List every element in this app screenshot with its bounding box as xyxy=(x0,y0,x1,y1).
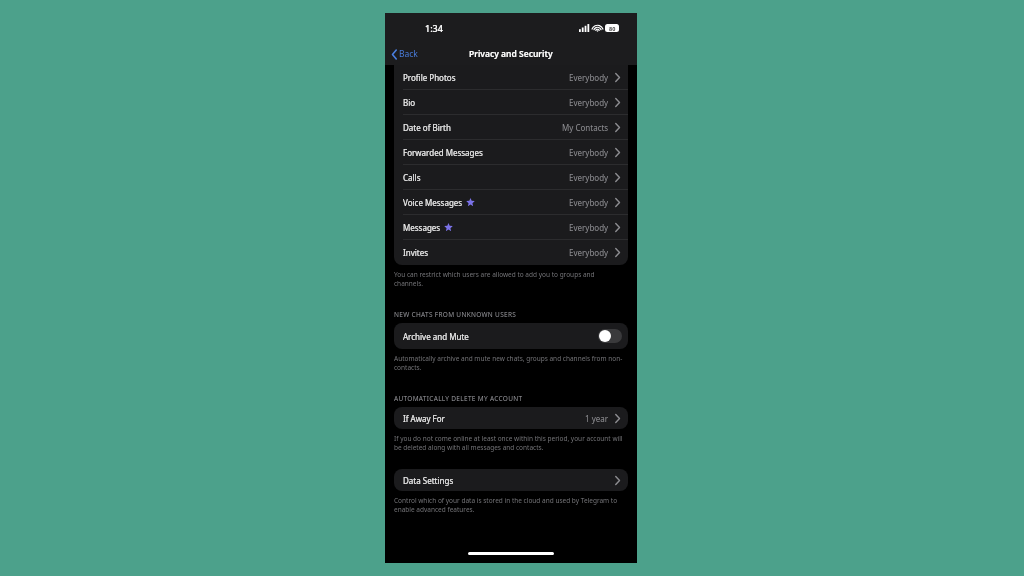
staticText: If you do not come online at least once … xyxy=(394,434,625,452)
staticText: Back xyxy=(399,48,418,60)
staticText: Automatically archive and mute new chats… xyxy=(394,354,625,372)
button[interactable]: Back xyxy=(390,46,420,62)
staticText: 80 xyxy=(609,25,616,32)
staticText: Forwarded Messages xyxy=(403,147,483,158)
button[interactable]: Calls xyxy=(394,165,628,190)
button[interactable]: Archive and Mute xyxy=(394,323,628,349)
staticText: You can restrict which users are allowed… xyxy=(394,270,625,288)
staticText: Everybody xyxy=(569,222,609,233)
button[interactable]: Invites xyxy=(394,240,628,265)
staticText: Archive and Mute xyxy=(403,331,469,342)
button[interactable]: Forwarded Messages xyxy=(394,140,628,165)
button[interactable]: Voice Messages xyxy=(394,190,628,215)
button[interactable]: Bio xyxy=(394,90,628,115)
staticText: 1:34 xyxy=(425,22,443,34)
staticText: Date of Birth xyxy=(403,122,451,133)
staticText: Bio xyxy=(403,97,416,108)
button[interactable]: Messages xyxy=(394,215,628,240)
button[interactable]: Profile Photos xyxy=(394,65,628,90)
staticText: Everybody xyxy=(569,197,609,208)
staticText: Profile Photos xyxy=(403,72,456,83)
button[interactable]: Date of Birth xyxy=(394,115,628,140)
staticText: 1 year xyxy=(585,413,609,424)
staticText: My Contacts xyxy=(562,122,609,133)
button[interactable]: Data Settings xyxy=(394,469,628,491)
staticText: Everybody xyxy=(569,97,609,108)
staticText: Voice Messages xyxy=(403,197,463,208)
staticText: Everybody xyxy=(569,172,609,183)
staticText: Messages xyxy=(403,222,441,233)
staticText: AUTOMATICALLY DELETE MY ACCOUNT xyxy=(394,394,523,403)
staticText: If Away For xyxy=(403,413,445,424)
button[interactable]: If Away For xyxy=(394,407,628,429)
staticText: Everybody xyxy=(569,247,609,258)
staticText: Invites xyxy=(403,247,429,258)
staticText: Calls xyxy=(403,172,421,183)
staticText: Everybody xyxy=(569,147,609,158)
staticText: NEW CHATS FROM UNKNOWN USERS xyxy=(394,310,517,319)
staticText: Everybody xyxy=(569,72,609,83)
staticText: Data Settings xyxy=(403,475,454,486)
staticText: Control which of your data is stored in … xyxy=(394,496,625,514)
staticText: Privacy and Security xyxy=(469,48,553,60)
